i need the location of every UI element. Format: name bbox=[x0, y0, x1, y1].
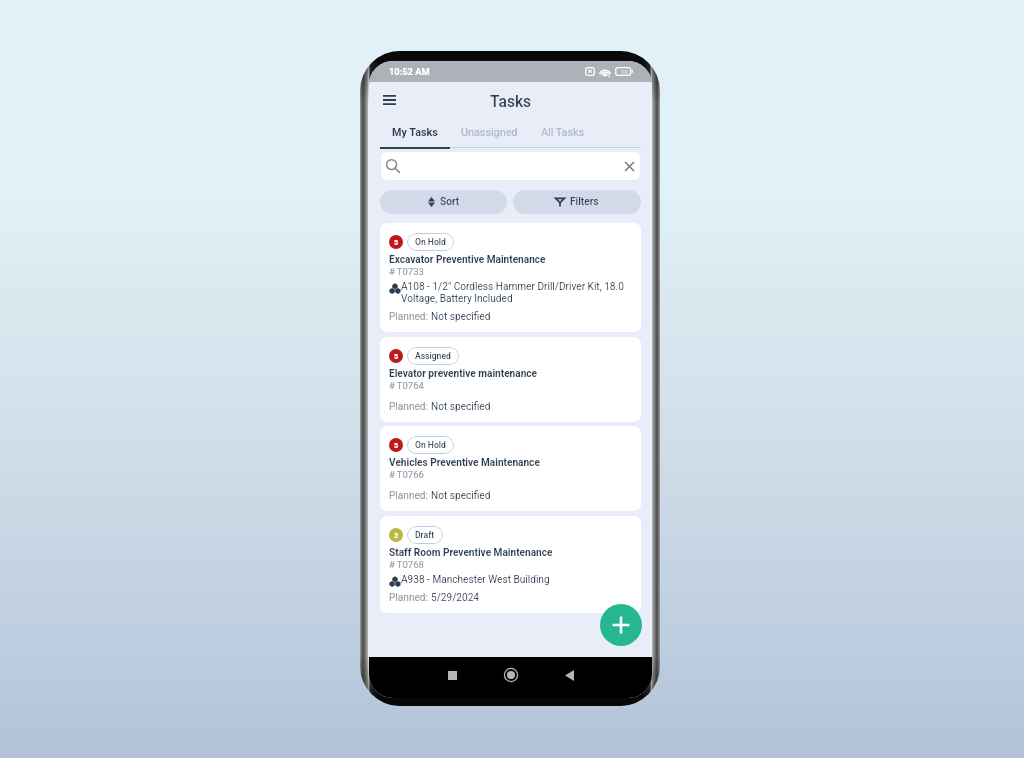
staticText: My Tasks bbox=[392, 126, 438, 139]
staticText: Unassigned bbox=[461, 126, 518, 139]
button[interactable]: Recents bbox=[439, 662, 465, 688]
button[interactable]: 5 bbox=[380, 337, 641, 422]
button[interactable]: 5 bbox=[380, 223, 641, 332]
button[interactable]: Sort bbox=[380, 190, 507, 214]
staticText: # T0766 bbox=[389, 469, 424, 480]
button[interactable]: Home bbox=[498, 662, 524, 688]
staticText: A938 - Manchester West Building bbox=[401, 574, 550, 586]
button[interactable]: Add task bbox=[600, 604, 642, 646]
button[interactable]: My Tasks bbox=[380, 117, 450, 147]
button[interactable]: 2 bbox=[380, 516, 641, 613]
staticText: Planned: bbox=[389, 490, 431, 502]
staticText: Excavator Preventive Maintenance bbox=[389, 254, 546, 266]
staticText: Not specified bbox=[431, 401, 491, 413]
staticText: All Tasks bbox=[541, 126, 585, 139]
button[interactable]: Back bbox=[556, 662, 582, 688]
staticText: Elevator preventive maintenance bbox=[389, 368, 538, 380]
staticText: Draft bbox=[415, 530, 435, 540]
staticText: Vehicles Preventive Maintenance bbox=[389, 457, 540, 469]
staticText: 5/29/2024 bbox=[431, 592, 480, 604]
staticText: Sort bbox=[440, 196, 460, 208]
staticText: Staff Room Preventive Maintenance bbox=[389, 547, 553, 559]
button[interactable]: Clear search bbox=[622, 159, 637, 174]
staticText: 5 bbox=[394, 352, 399, 360]
button[interactable]: Menu bbox=[377, 88, 401, 112]
staticText: 2 bbox=[394, 531, 399, 539]
staticText: On Hold bbox=[415, 237, 446, 247]
staticText: Assigned bbox=[415, 351, 451, 361]
staticText: Planned: bbox=[389, 311, 431, 323]
button[interactable]: Clear search bbox=[381, 152, 640, 180]
button[interactable]: All Tasks bbox=[529, 117, 597, 147]
staticText: Not specified bbox=[431, 311, 491, 323]
staticText: Not specified bbox=[431, 490, 491, 502]
staticText: On Hold bbox=[415, 440, 446, 450]
staticText: 5 bbox=[394, 238, 399, 246]
staticText: Filters bbox=[570, 196, 599, 208]
staticText: Tasks bbox=[490, 93, 532, 111]
staticText: 10:52 AM bbox=[389, 66, 430, 77]
button[interactable]: Filters bbox=[513, 190, 641, 214]
staticText: Voltage, Battery Included bbox=[401, 293, 513, 305]
button[interactable]: Unassigned bbox=[450, 117, 529, 147]
staticText: # T0764 bbox=[389, 380, 424, 391]
staticText: # T0768 bbox=[389, 559, 424, 570]
staticText: Planned: bbox=[389, 401, 431, 413]
staticText: 20 bbox=[621, 68, 628, 75]
staticText: A108 - 1/2" Cordless Hammer Drill/Driver… bbox=[401, 281, 624, 293]
staticText: 5 bbox=[394, 441, 399, 449]
staticText: Planned: bbox=[389, 592, 431, 604]
button[interactable]: 5 bbox=[380, 426, 641, 511]
staticText: # T0733 bbox=[389, 266, 424, 277]
